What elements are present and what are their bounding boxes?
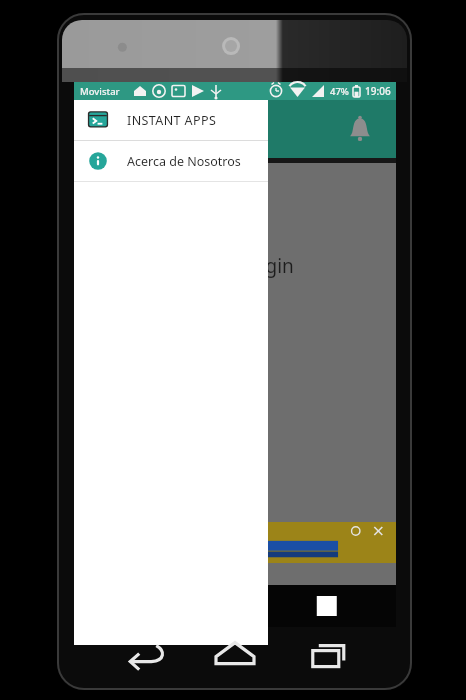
button[interactable]: INSTANT APPS: [74, 100, 268, 140]
button[interactable]: Notifications: [340, 109, 380, 149]
button[interactable]: Acerca de Nosotros: [74, 141, 268, 181]
staticText: INSTANT APPS: [127, 112, 217, 129]
staticText: Acerca de Nosotros: [127, 153, 241, 170]
button[interactable]: [74, 522, 396, 563]
staticText: 47%: [330, 85, 349, 98]
staticText: Login: [244, 253, 294, 279]
staticText: 19:06: [365, 84, 391, 98]
staticText: Movistar: [80, 85, 120, 98]
